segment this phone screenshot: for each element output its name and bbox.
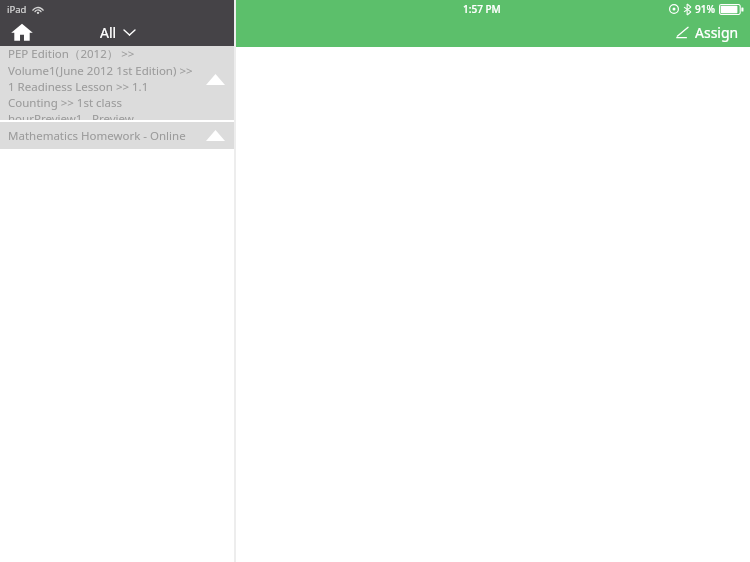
staticText: All (100, 23, 117, 42)
button[interactable]: Home (7, 18, 37, 46)
staticText: Assign (695, 23, 739, 42)
staticText: Mathematics Homework - Online (8, 128, 186, 144)
button[interactable]: All (92, 21, 143, 44)
staticText: PEP Edition（2012） >> Volume1(June 2012 1… (8, 46, 198, 120)
staticText: 91% (695, 2, 715, 16)
button[interactable]: PEP Edition（2012） >> Volume1(June 2012 1… (0, 46, 234, 120)
staticText: 1:57 PM (463, 2, 501, 16)
button[interactable]: Assign (665, 20, 750, 45)
staticText: iPad (7, 3, 27, 16)
button[interactable]: Mathematics Homework - Online (0, 122, 234, 149)
